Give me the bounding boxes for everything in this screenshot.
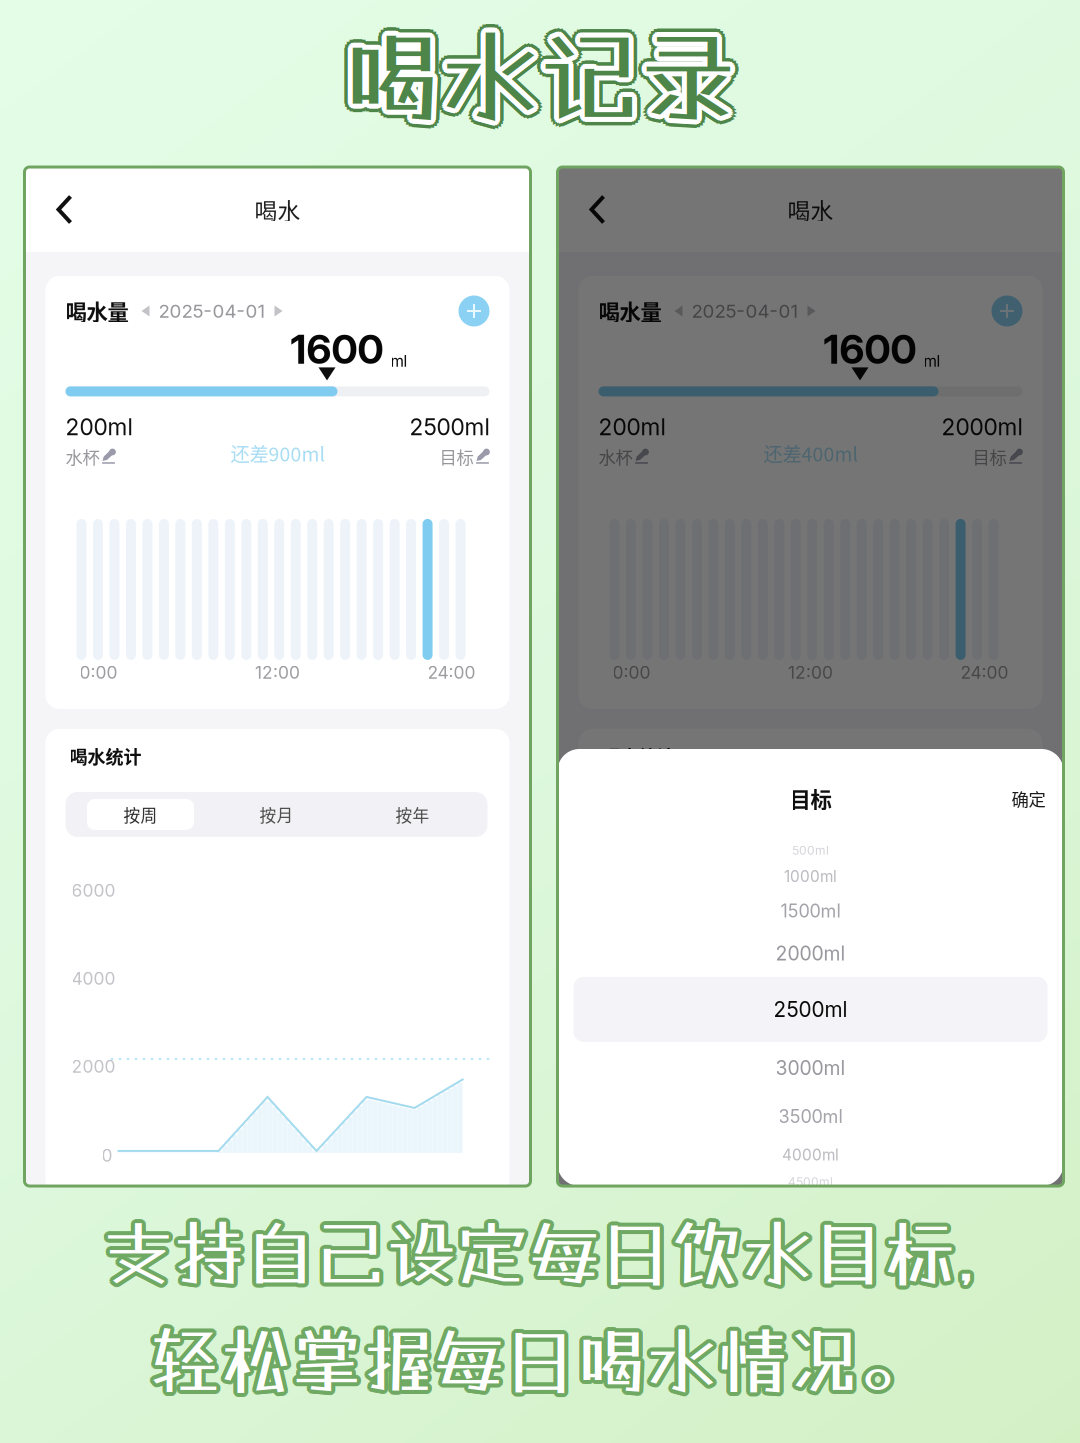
staticText: 支持自己设定每日饮水目标,	[107, 1210, 981, 1293]
staticText: 支持自己设定每日饮水目标,	[99, 1210, 973, 1293]
staticText: 2025-04-01	[691, 300, 798, 322]
staticText: 2500ml	[773, 997, 847, 1022]
staticText: 喝水记录	[341, 15, 737, 131]
staticText: 0	[101, 1145, 112, 1166]
staticText: 支持自己设定每日饮水目标,	[100, 1214, 974, 1297]
staticText: 喝水量	[598, 296, 661, 326]
staticText: 喝水记录	[339, 26, 735, 142]
staticText: 喝水记录	[340, 18, 736, 134]
staticText: 喝水记录	[343, 17, 739, 134]
button[interactable]: 确定	[1011, 786, 1045, 811]
staticText: 喝水记录	[336, 15, 732, 132]
staticText: 喝水记录	[343, 19, 739, 136]
button[interactable]: 添加喝水	[458, 295, 489, 326]
staticText: 轻松掌握每日喝水情况。	[147, 1319, 928, 1402]
staticText: 喝水记录	[342, 16, 738, 133]
staticText: 3500ml	[778, 1105, 842, 1127]
staticText: 按月	[259, 802, 293, 826]
staticText: 轻松掌握每日喝水情况。	[149, 1320, 930, 1404]
staticText: 支持自己设定每日饮水目标,	[103, 1213, 977, 1297]
staticText: 支持自己设定每日饮水目标,	[104, 1209, 978, 1293]
staticText: 喝水记录	[347, 18, 743, 134]
staticText: 喝水记录	[342, 13, 738, 129]
staticText: 支持自己设定每日饮水目标,	[99, 1211, 973, 1295]
button[interactable]: 按月	[208, 799, 344, 830]
staticText: 喝水记录	[340, 13, 736, 130]
staticText: 喝水记录	[336, 12, 732, 128]
staticText: 喝水记录	[334, 21, 730, 137]
staticText: 支持自己设定每日饮水目标,	[105, 1211, 979, 1295]
staticText: 喝水记录	[341, 16, 737, 133]
staticText: 轻松掌握每日喝水情况。	[148, 1317, 929, 1401]
button[interactable]: 添加喝水	[991, 295, 1022, 326]
staticText: 喝水记录	[347, 20, 743, 136]
staticText: 6000	[71, 880, 115, 901]
staticText: 喝水记录	[345, 18, 741, 134]
staticText: 喝水记录	[337, 18, 733, 134]
staticText: 喝水记录	[334, 14, 730, 131]
staticText: 轻松掌握每日喝水情况。	[153, 1319, 934, 1402]
staticText: 24:00	[960, 662, 1008, 683]
staticText: 支持自己设定每日饮水目标,	[105, 1210, 979, 1294]
staticText: 轻松掌握每日喝水情况。	[147, 1321, 928, 1405]
staticText: 喝水记录	[345, 14, 741, 131]
staticText: 目标	[439, 444, 473, 469]
staticText: 喝水记录	[343, 21, 739, 137]
staticText: 确定	[1011, 786, 1045, 811]
staticText: 500ml	[792, 843, 829, 858]
staticText: 喝水记录	[350, 18, 746, 134]
staticText: 喝水记录	[342, 24, 738, 141]
staticText: 4000ml	[782, 1146, 839, 1164]
staticText: 喝水记录	[342, 19, 738, 136]
staticText: 轻松掌握每日喝水情况。	[151, 1317, 932, 1401]
staticText: 喝水记录	[342, 11, 738, 128]
staticText: 轻松掌握每日喝水情况。	[145, 1319, 926, 1402]
staticText: 轻松掌握每日喝水情况。	[148, 1315, 929, 1398]
staticText: 轻松掌握每日喝水情况。	[151, 1322, 932, 1406]
staticText: 1500ml	[780, 900, 840, 922]
staticText: 支持自己设定每日饮水目标,	[100, 1208, 974, 1292]
staticText: 支持自己设定每日饮水目标,	[103, 1215, 977, 1299]
staticText: 1600	[823, 325, 916, 373]
button[interactable]: 按月	[741, 799, 877, 830]
button[interactable]: 返回	[569, 167, 625, 252]
staticText: 喝水记录	[337, 22, 733, 139]
staticText: 喝水记录	[343, 18, 739, 134]
staticText: 喝水记录	[347, 16, 743, 132]
staticText: 喝水记录	[348, 18, 744, 134]
staticText: 轻松掌握每日喝水情况。	[149, 1321, 930, 1404]
staticText: 喝水记录	[341, 18, 737, 135]
staticText: 支持自己设定每日饮水目标,	[107, 1213, 981, 1296]
staticText: 喝水记录	[344, 12, 740, 128]
staticText: 喝水记录	[340, 22, 736, 139]
button[interactable]: 按年	[877, 799, 1013, 830]
staticText: 喝水记录	[347, 22, 743, 139]
staticText: 喝水记录	[339, 24, 735, 140]
staticText: 目标	[972, 444, 1006, 469]
staticText: 喝水记录	[347, 13, 743, 130]
button[interactable]: 返回	[36, 167, 92, 252]
button[interactable]: 按周	[72, 799, 208, 830]
staticText: 200ml	[65, 413, 132, 441]
staticText: 喝水量	[65, 296, 128, 326]
staticText: 喝水记录	[343, 16, 739, 133]
staticText: 喝水记录	[342, 18, 738, 134]
staticText: 轻松掌握每日喝水情况。	[151, 1319, 932, 1403]
staticText: 按年	[395, 802, 429, 826]
staticText: 支持自己设定每日饮水目标,	[106, 1214, 980, 1297]
staticText: 4000	[71, 968, 115, 989]
button[interactable]: 按年	[344, 799, 480, 830]
staticText: 喝水记录	[339, 12, 735, 128]
staticText: 3000ml	[775, 1056, 845, 1080]
staticText: 喝水记录	[338, 14, 734, 131]
staticText: 支持自己设定每日饮水目标,	[104, 1213, 978, 1296]
staticText: 喝水统计	[69, 743, 141, 769]
staticText: 0:00	[612, 662, 650, 683]
staticText: 支持自己设定每日饮水目标,	[104, 1215, 978, 1298]
staticText: 轻松掌握每日喝水情况。	[153, 1317, 934, 1400]
staticText: 支持自己设定每日饮水目标,	[106, 1208, 980, 1292]
staticText: 喝水记录	[342, 23, 738, 139]
